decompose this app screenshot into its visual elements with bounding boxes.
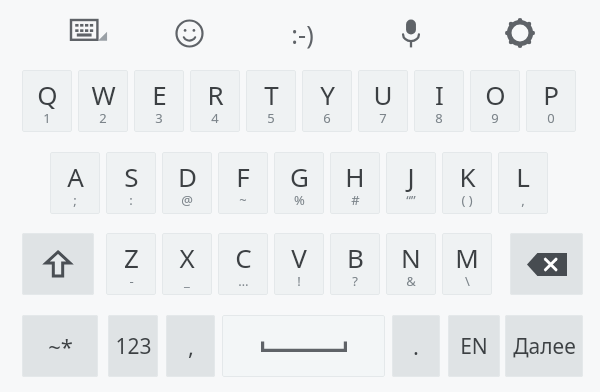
staticText: ,	[188, 331, 194, 361]
staticText: !	[297, 272, 301, 290]
staticText: &	[406, 272, 416, 290]
staticText: 3	[155, 109, 163, 127]
button[interactable]: Q	[22, 70, 72, 132]
button[interactable]: A	[50, 152, 100, 214]
button[interactable]: .	[392, 315, 440, 377]
button[interactable]: H	[330, 152, 380, 214]
button[interactable]: S	[106, 152, 156, 214]
staticText: _	[184, 272, 190, 290]
staticText: ~	[239, 191, 247, 209]
staticText: 8	[435, 109, 443, 127]
staticText: Y	[320, 77, 335, 112]
button[interactable]: G	[274, 152, 324, 214]
staticText: O	[485, 77, 506, 112]
button[interactable]: T	[246, 70, 296, 132]
button[interactable]: P	[526, 70, 576, 132]
staticText: C	[235, 240, 252, 275]
staticText: 1	[43, 109, 51, 127]
staticText: F	[236, 159, 250, 194]
staticText: -	[129, 272, 134, 290]
button[interactable]: B	[330, 233, 380, 295]
button[interactable]: E	[134, 70, 184, 132]
staticText: 5	[267, 109, 275, 127]
staticText: A	[67, 159, 84, 194]
staticText: :	[129, 191, 133, 209]
staticText: E	[152, 77, 167, 112]
staticText: 0	[547, 109, 555, 127]
staticText: G	[290, 159, 309, 194]
staticText: X	[179, 240, 195, 275]
button[interactable]: X	[162, 233, 212, 295]
staticText: Q	[37, 77, 58, 112]
button[interactable]: I	[414, 70, 464, 132]
staticText: 9	[491, 109, 499, 127]
button[interactable]: Space	[222, 315, 385, 377]
button[interactable]: ,	[166, 315, 215, 377]
button[interactable]: Далее	[505, 315, 583, 377]
staticText: W	[91, 77, 116, 112]
button[interactable]: Emoji	[173, 17, 205, 49]
staticText: 2	[99, 109, 107, 127]
staticText: M	[455, 240, 479, 275]
button[interactable]: J	[386, 152, 436, 214]
staticText: 6	[323, 109, 331, 127]
staticText: V	[291, 240, 307, 275]
staticText: B	[347, 240, 364, 275]
button[interactable]: U	[358, 70, 408, 132]
staticText: %	[294, 191, 305, 209]
button[interactable]: 123	[108, 315, 158, 377]
staticText: EN	[460, 332, 488, 361]
staticText: #	[351, 191, 360, 209]
staticText: ;	[73, 191, 77, 209]
button[interactable]: Shift	[22, 233, 94, 295]
button[interactable]: F	[218, 152, 268, 214]
button[interactable]: Z	[106, 233, 156, 295]
button[interactable]: M	[442, 233, 492, 295]
staticText: S	[124, 159, 139, 194]
button[interactable]: L	[498, 152, 548, 214]
staticText: L	[516, 159, 530, 194]
staticText: Z	[124, 240, 139, 275]
button[interactable]: ~*	[22, 315, 98, 377]
staticText: J	[407, 159, 415, 194]
button[interactable]: C	[218, 233, 268, 295]
button[interactable]: Voice input	[397, 16, 425, 50]
staticText: .	[413, 331, 419, 361]
button[interactable]: Y	[302, 70, 352, 132]
button[interactable]: Settings	[503, 16, 537, 50]
staticText: ,	[521, 191, 525, 209]
staticText: P	[543, 77, 559, 112]
button[interactable]: O	[470, 70, 520, 132]
staticText: ( )	[461, 191, 473, 209]
button[interactable]: Change keyboard	[70, 18, 114, 48]
staticText: Далее	[513, 332, 576, 361]
staticText: U	[373, 77, 393, 112]
button[interactable]: D	[162, 152, 212, 214]
staticText: 7	[379, 109, 387, 127]
staticText: T	[264, 77, 279, 112]
button[interactable]: K	[442, 152, 492, 214]
button[interactable]: V	[274, 233, 324, 295]
staticText: “”	[406, 191, 416, 209]
button[interactable]: R	[190, 70, 240, 132]
staticText: @	[181, 191, 193, 209]
staticText: R	[207, 77, 224, 112]
staticText: N	[401, 240, 421, 275]
staticText: 123	[115, 332, 152, 361]
button[interactable]: EN	[448, 315, 500, 377]
staticText: D	[178, 159, 197, 194]
staticText: H	[345, 159, 365, 194]
staticText: ~*	[48, 331, 73, 361]
button[interactable]: N	[386, 233, 436, 295]
staticText: I	[435, 77, 444, 112]
staticText: …	[238, 272, 249, 290]
button[interactable]: W	[78, 70, 128, 132]
staticText: ?	[352, 272, 358, 290]
button[interactable]: Backspace	[510, 233, 583, 295]
staticText: 4	[211, 109, 219, 127]
staticText: K	[459, 159, 476, 194]
button[interactable]: :-)	[279, 17, 325, 49]
staticText: :-)	[291, 17, 314, 49]
staticText: \	[465, 272, 470, 290]
